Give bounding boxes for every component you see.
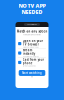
staticText: AirPlay supported (23, 65, 36, 67)
button[interactable]: Open on your TV browser (18, 39, 46, 48)
staticText: No download required (23, 56, 39, 58)
button[interactable]: Cast from your phone (18, 58, 46, 67)
staticText: NEEDED (21, 8, 42, 16)
staticText: stream.tv/watch (27, 24, 37, 25)
staticText: Nothing to install — open the link (23, 34, 41, 36)
staticText: Watch on any screen (16, 30, 47, 33)
button[interactable]: Start watching (19, 70, 45, 76)
button[interactable]: Stream instantly (18, 48, 46, 58)
staticText: Cast from your phone (23, 58, 44, 65)
staticText: Safari, Chrome or Edge (23, 46, 39, 48)
staticText: NO TV APP (18, 2, 45, 9)
staticText: Stream instantly (23, 48, 35, 56)
staticText: Open on your TV browser (23, 39, 43, 46)
staticText: Start watching (22, 71, 42, 75)
